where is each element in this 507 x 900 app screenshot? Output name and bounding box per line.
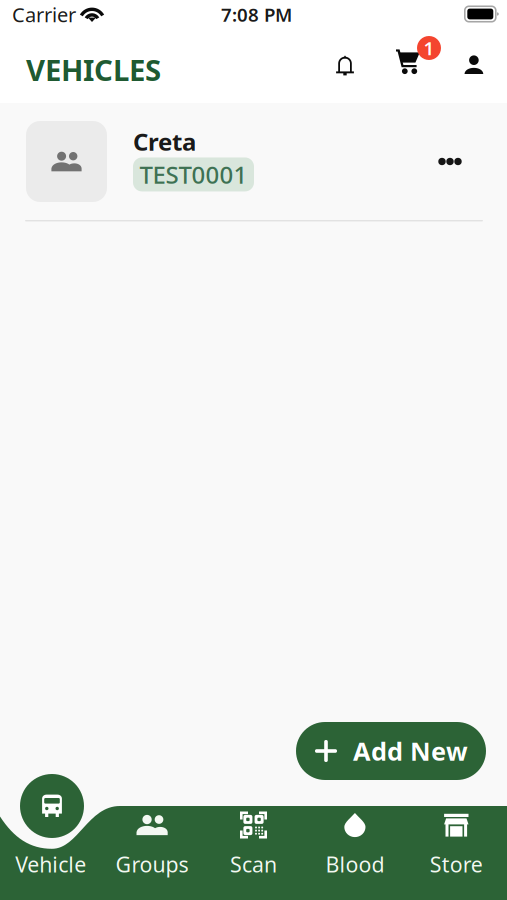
staticText: TEST0001: [139, 158, 247, 190]
button[interactable]: Blood: [304, 802, 406, 896]
staticText: Add New: [353, 734, 468, 768]
button[interactable]: Groups: [101, 802, 203, 896]
staticText: Blood: [325, 850, 384, 878]
button[interactable]: Notifications: [322, 36, 368, 103]
staticText: Creta: [133, 126, 196, 157]
button[interactable]: Profile: [451, 36, 497, 103]
button[interactable]: Creta: [0, 103, 507, 221]
staticText: Carrier: [12, 1, 76, 28]
button[interactable]: Store: [406, 802, 507, 896]
staticText: Store: [430, 850, 483, 878]
staticText: Groups: [116, 850, 189, 878]
staticText: Scan: [230, 850, 277, 878]
button[interactable]: Scan: [203, 802, 304, 896]
staticText: Vehicle: [15, 850, 86, 878]
button[interactable]: Vehicle: [0, 802, 101, 896]
staticText: 7:08 PM: [221, 2, 292, 27]
button[interactable]: Add New: [296, 722, 486, 780]
button[interactable]: Cart: [385, 36, 431, 103]
button[interactable]: Vehicle tab: [0, 770, 507, 900]
staticText: 1: [423, 36, 434, 60]
staticText: VEHICLES: [26, 50, 161, 89]
